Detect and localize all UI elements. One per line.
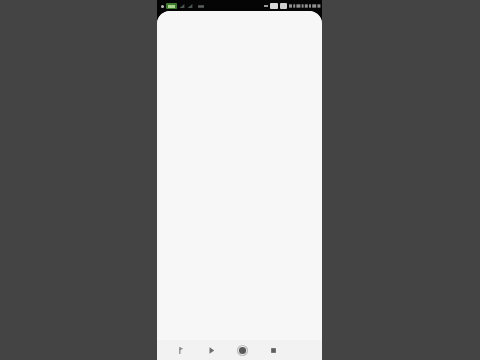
button[interactable]: Play <box>200 340 222 360</box>
button[interactable]: Record <box>231 340 253 360</box>
button[interactable]: Stop <box>262 340 284 360</box>
button[interactable]: Add marker <box>169 340 191 360</box>
